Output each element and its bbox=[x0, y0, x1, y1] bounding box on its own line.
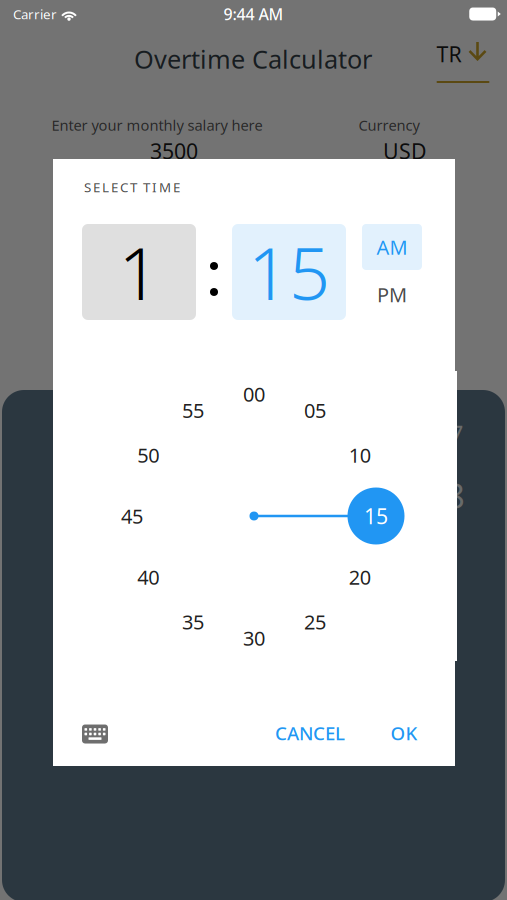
staticText: 15 bbox=[364, 502, 388, 530]
staticText: PM bbox=[377, 281, 407, 308]
staticText: 35 bbox=[182, 608, 204, 635]
staticText: 00 bbox=[243, 381, 265, 407]
button[interactable]: CANCEL bbox=[263, 712, 357, 754]
button[interactable]: 15 bbox=[232, 224, 346, 320]
button[interactable]: 1 bbox=[82, 224, 196, 320]
button[interactable]: TR bbox=[424, 28, 500, 88]
staticText: 55 bbox=[182, 397, 204, 424]
staticText: OK bbox=[390, 721, 417, 745]
staticText: 40 bbox=[137, 564, 159, 590]
button[interactable]: AM bbox=[362, 224, 422, 270]
staticText: AM bbox=[376, 234, 407, 260]
staticText: 1 bbox=[118, 224, 159, 320]
staticText: 45 bbox=[121, 503, 143, 529]
staticText: 30 bbox=[243, 625, 265, 651]
staticText: Enter your monthly salary here bbox=[51, 115, 262, 135]
staticText: 50 bbox=[137, 442, 159, 468]
staticText: Currency bbox=[358, 115, 419, 135]
staticText: 15 bbox=[248, 224, 330, 320]
staticText: 25 bbox=[304, 608, 326, 635]
button[interactable]: Switch to text input bbox=[73, 715, 117, 752]
staticText: S E L E C T T I M E bbox=[84, 178, 180, 196]
button[interactable]: PM bbox=[362, 271, 422, 318]
button[interactable]: OK bbox=[378, 712, 429, 754]
staticText: 10 bbox=[349, 442, 371, 468]
staticText: USD bbox=[383, 137, 427, 165]
staticText: TR bbox=[436, 40, 461, 68]
staticText: Carrier bbox=[13, 5, 57, 23]
staticText: 05 bbox=[304, 397, 326, 424]
staticText: 20 bbox=[349, 564, 371, 590]
staticText: 9:44 AM bbox=[223, 3, 283, 25]
staticText: Overtime Calculator bbox=[134, 42, 372, 76]
staticText: 7 bbox=[449, 417, 463, 451]
staticText: CANCEL bbox=[275, 721, 345, 745]
staticText: 8 bbox=[445, 472, 465, 518]
staticText: 3500 bbox=[150, 137, 198, 165]
